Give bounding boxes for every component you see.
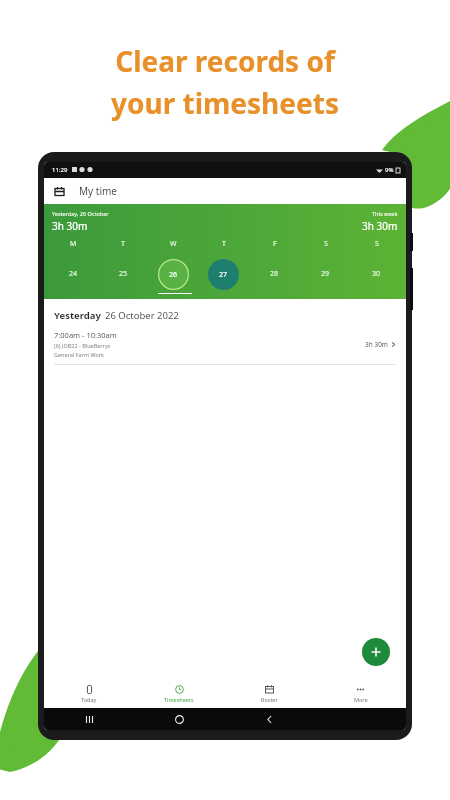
staticText: 3h 30m <box>362 219 398 233</box>
staticText: (6) JOB22 - BlueBerrys <box>54 342 111 349</box>
staticText: 11:29 <box>52 166 68 174</box>
button[interactable]: 29 <box>300 257 351 291</box>
button[interactable]: Today <box>44 680 134 708</box>
button[interactable]: Add timesheet entry <box>362 638 390 666</box>
staticText: M <box>70 239 77 249</box>
staticText: 24 <box>69 269 78 279</box>
staticText: T <box>222 239 226 249</box>
staticText: Clear records of <box>115 42 335 80</box>
staticText: 26 <box>169 270 178 280</box>
staticText: More <box>354 696 368 703</box>
staticText: 3h 30m <box>52 219 88 233</box>
button[interactable]: 7:00am - 10:30am <box>44 326 406 364</box>
staticText: 25 <box>119 269 128 279</box>
staticText: 29 <box>321 269 330 279</box>
button[interactable]: 26 <box>148 257 198 291</box>
button[interactable]: Recent apps <box>44 708 134 730</box>
staticText: 28 <box>270 269 279 279</box>
button[interactable]: Timesheets <box>134 680 224 708</box>
staticText: S <box>324 239 328 249</box>
staticText: 7:00am - 10:30am <box>54 330 117 340</box>
staticText: 3h 30m <box>365 340 388 349</box>
other: Calendar <box>54 186 65 197</box>
button[interactable]: Home <box>134 708 224 730</box>
staticText: S <box>375 239 379 249</box>
staticText: T <box>121 239 125 249</box>
button[interactable]: 27 <box>198 257 249 291</box>
button[interactable]: More <box>315 680 406 708</box>
staticText: This week <box>372 210 398 217</box>
staticText: 27 <box>219 270 228 280</box>
button[interactable]: Back <box>224 708 315 730</box>
staticText: Roster <box>261 696 278 703</box>
button[interactable]: Roster <box>224 680 315 708</box>
staticText: Yesterday, 26 October <box>52 210 109 217</box>
staticText: W <box>170 239 177 249</box>
button[interactable]: 24 <box>48 257 98 291</box>
staticText: your timesheets <box>111 84 339 122</box>
staticText: General Farm Work <box>54 351 105 358</box>
button[interactable]: 28 <box>249 257 300 291</box>
staticText: 30 <box>372 269 381 279</box>
staticText: Timesheets <box>164 696 194 703</box>
button[interactable]: 25 <box>98 257 148 291</box>
button[interactable]: 30 <box>351 257 402 291</box>
staticText: 26 October 2022 <box>105 309 179 322</box>
staticText: Today <box>81 696 97 703</box>
staticText: Yesterday <box>54 309 101 322</box>
staticText: 9% <box>385 166 394 174</box>
staticText: My time <box>79 184 117 198</box>
staticText: F <box>273 239 277 249</box>
